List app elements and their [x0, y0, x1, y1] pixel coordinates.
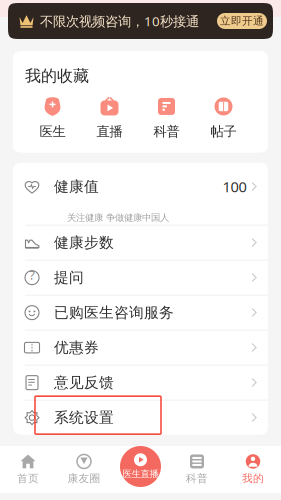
staticText: 健康步数: [54, 234, 114, 252]
staticText: 帖子: [210, 123, 236, 140]
staticText: ?: [29, 267, 34, 283]
staticText: 科普: [186, 472, 208, 485]
button[interactable]: 科普: [138, 97, 195, 140]
staticText: 直播: [96, 123, 122, 140]
staticText: 医生: [39, 123, 65, 140]
staticText: 不限次视频咨询，10秒接通: [40, 12, 199, 30]
button[interactable]: 康友圈: [56, 446, 112, 493]
staticText: 提问: [54, 269, 84, 287]
button[interactable]: 优惠券: [13, 331, 268, 365]
staticText: 已购医生咨询服务: [54, 304, 174, 322]
staticText: 意见反馈: [54, 374, 114, 392]
staticText: 立即开通: [220, 14, 264, 27]
button[interactable]: ?: [13, 261, 268, 295]
staticText: 医生直播: [122, 468, 158, 480]
button[interactable]: 系统设置: [13, 401, 268, 435]
button[interactable]: 健康步数: [13, 226, 268, 260]
staticText: 100: [222, 177, 246, 196]
staticText: 优惠券: [54, 339, 99, 357]
button[interactable]: 直播: [81, 97, 138, 140]
button[interactable]: 医生: [24, 97, 81, 140]
button[interactable]: 立即开通: [217, 13, 267, 29]
button[interactable]: 医生直播: [120, 446, 161, 487]
staticText: 系统设置: [54, 409, 114, 427]
button[interactable]: 意见反馈: [13, 366, 268, 400]
staticText: 我的收藏: [25, 66, 89, 86]
button[interactable]: 科普: [169, 446, 225, 493]
button[interactable]: 我的: [225, 446, 281, 493]
staticText: 康友圈: [67, 472, 100, 485]
button[interactable]: 首页: [0, 446, 56, 493]
staticText: 科普: [153, 123, 179, 140]
button[interactable]: 帖子: [195, 97, 252, 140]
staticText: 首页: [17, 472, 39, 485]
staticText: 健康值: [54, 178, 99, 196]
staticText: 关注健康 争做健康中国人: [67, 212, 169, 223]
button[interactable]: 已购医生咨询服务: [13, 296, 268, 330]
button[interactable]: 健康值: [13, 163, 268, 225]
staticText: 我的: [242, 472, 264, 485]
